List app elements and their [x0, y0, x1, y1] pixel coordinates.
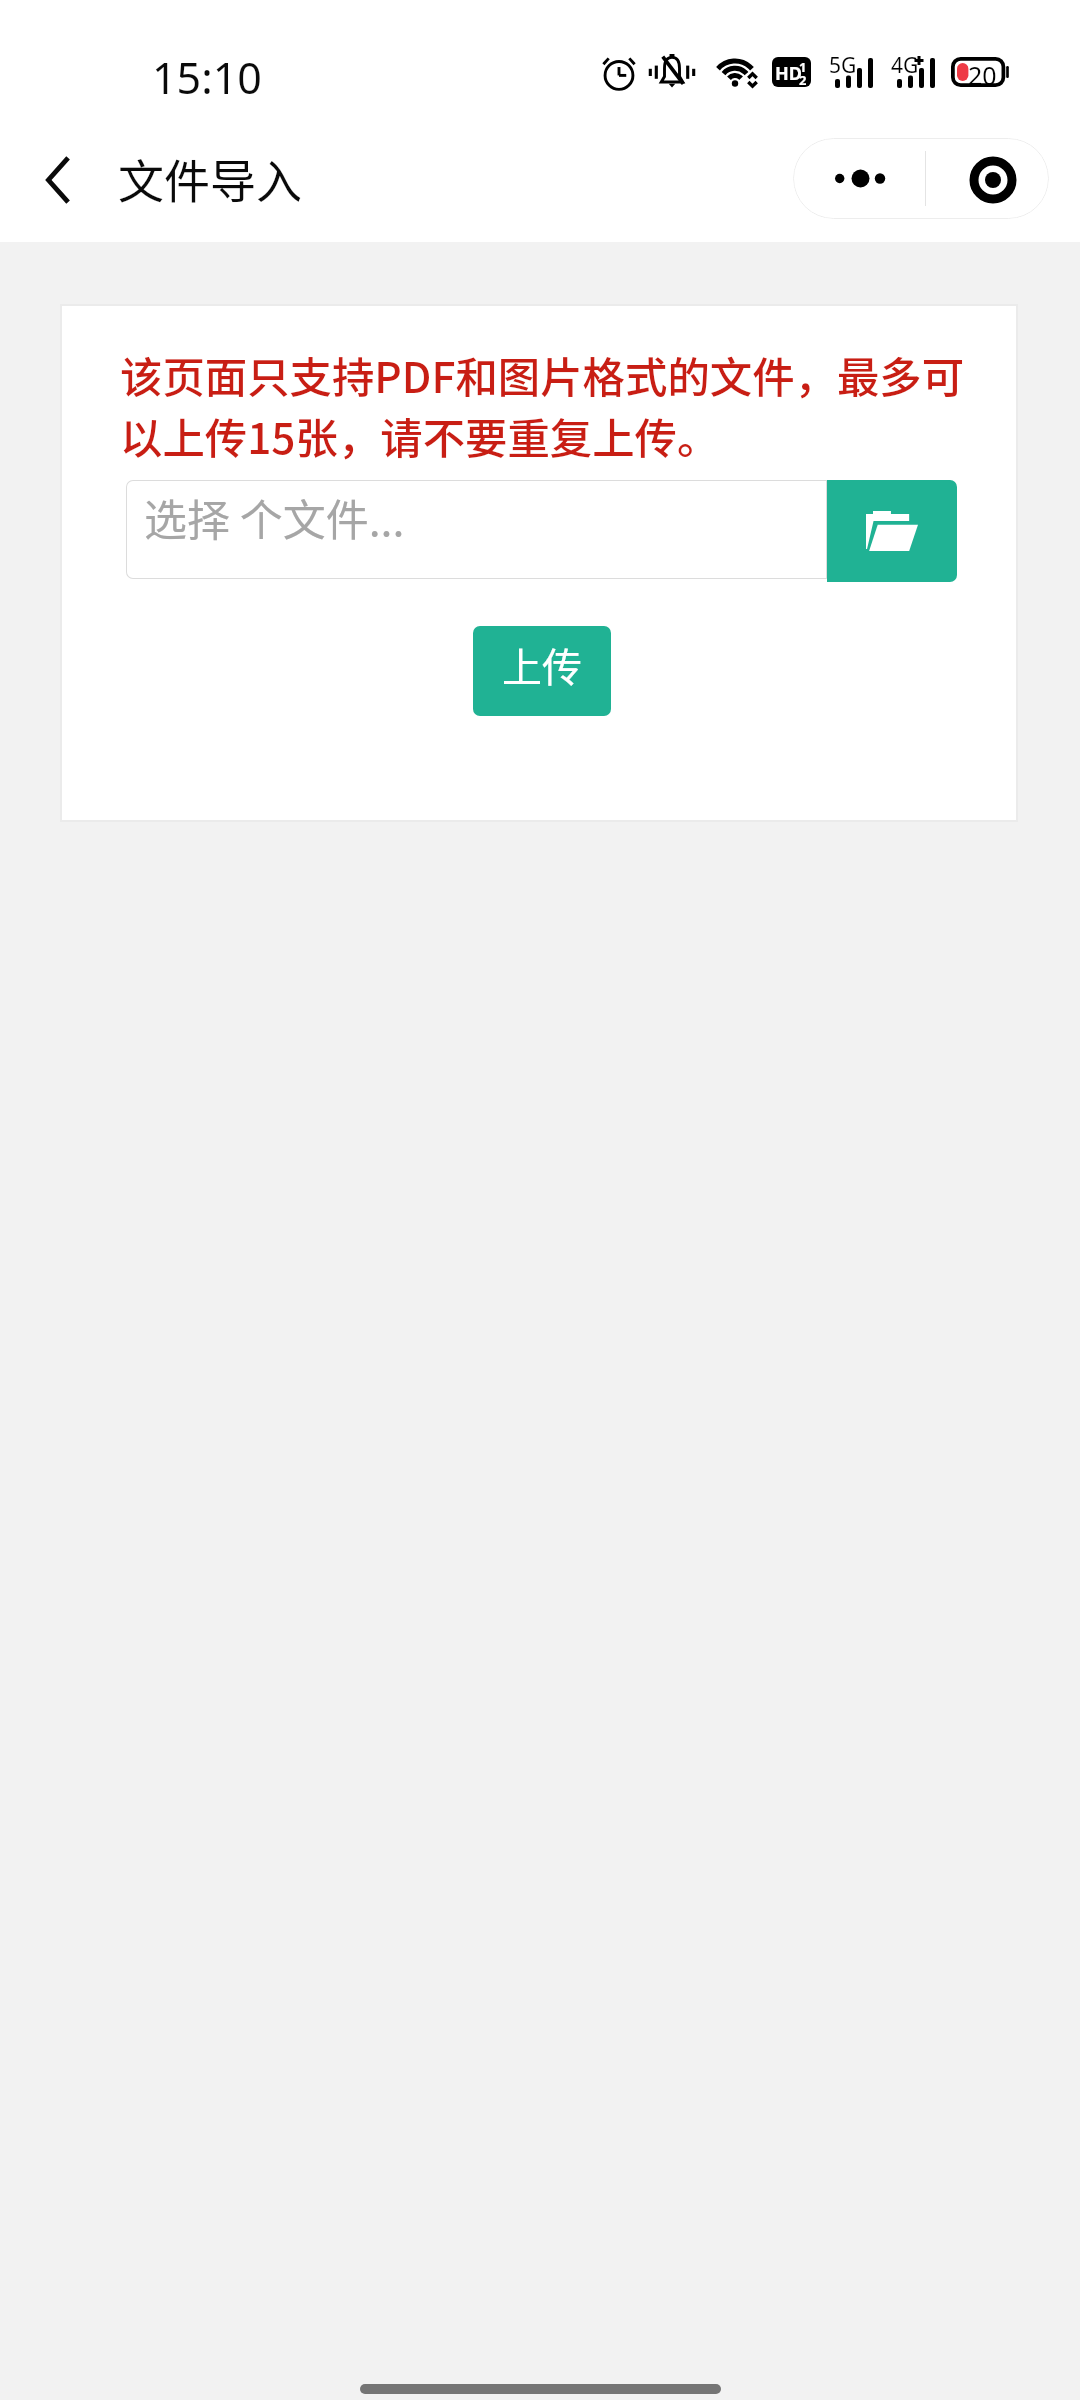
staticText: HD	[775, 61, 802, 86]
staticText: 4G	[891, 51, 919, 80]
button[interactable]: 更多	[793, 138, 925, 219]
staticText: 选择 个文件...	[144, 486, 405, 548]
staticText: 上传	[502, 636, 582, 694]
button[interactable]: 返回	[28, 144, 88, 216]
staticText: 5G	[829, 51, 857, 80]
staticText: 1	[799, 58, 807, 76]
button[interactable]: 关闭	[926, 138, 1049, 219]
staticText: 2	[799, 71, 807, 87]
staticText: 15:10	[152, 48, 262, 107]
staticText: 20	[968, 58, 997, 88]
button[interactable]: 选择文件	[827, 480, 957, 582]
staticText: 文件导入	[118, 145, 302, 212]
staticText: 该页面只支持PDF和图片格式的文件，最多可以上传15张，请不要重复上传。	[120, 344, 976, 466]
button[interactable]: 上传	[473, 626, 611, 716]
button[interactable]: 选择 个文件...	[126, 480, 827, 579]
